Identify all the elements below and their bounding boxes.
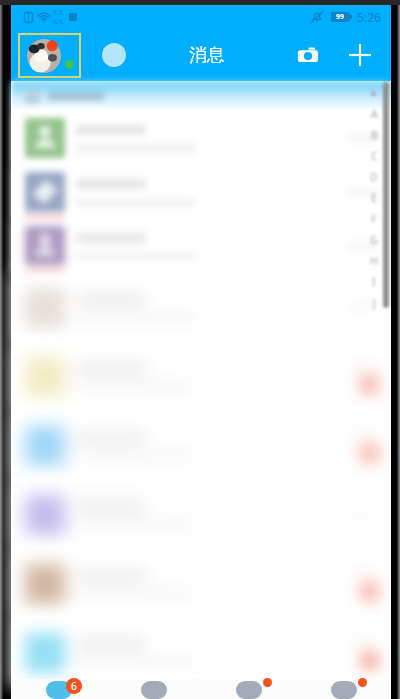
button[interactable]: Tab bbox=[11, 679, 106, 699]
staticText: D bbox=[370, 170, 378, 184]
button[interactable] bbox=[11, 342, 391, 411]
button[interactable]: Alphabet index bbox=[368, 82, 380, 313]
button[interactable]: Add bbox=[341, 36, 379, 74]
button[interactable] bbox=[11, 111, 391, 165]
staticText: B bbox=[371, 128, 378, 142]
button[interactable]: Tab bbox=[106, 679, 201, 699]
staticText: 3.3 bbox=[53, 8, 63, 17]
staticText: E bbox=[371, 191, 377, 205]
staticText: I bbox=[372, 275, 376, 289]
staticText: G bbox=[370, 233, 378, 247]
button[interactable] bbox=[11, 480, 391, 549]
staticText: 99 bbox=[336, 12, 345, 22]
button[interactable]: Tab bbox=[201, 679, 296, 699]
button[interactable] bbox=[11, 219, 391, 273]
staticText: 消息 bbox=[189, 44, 225, 67]
staticText: 5:26 bbox=[357, 9, 381, 25]
button[interactable] bbox=[11, 273, 391, 342]
button[interactable] bbox=[11, 618, 391, 687]
button[interactable]: Camera bbox=[289, 36, 327, 74]
staticText: 6 bbox=[71, 679, 77, 693]
button[interactable]: Tab bbox=[296, 679, 391, 699]
button[interactable] bbox=[11, 549, 391, 618]
staticText: K/s bbox=[53, 17, 63, 26]
button[interactable] bbox=[11, 411, 391, 480]
staticText: A bbox=[371, 107, 378, 121]
staticText: C bbox=[371, 149, 378, 163]
button[interactable]: Profile bbox=[18, 33, 81, 78]
staticText: H bbox=[370, 254, 378, 268]
staticText: J bbox=[373, 296, 376, 310]
button[interactable] bbox=[11, 165, 391, 219]
staticText: F bbox=[371, 212, 377, 226]
staticText: ★ bbox=[369, 87, 379, 99]
